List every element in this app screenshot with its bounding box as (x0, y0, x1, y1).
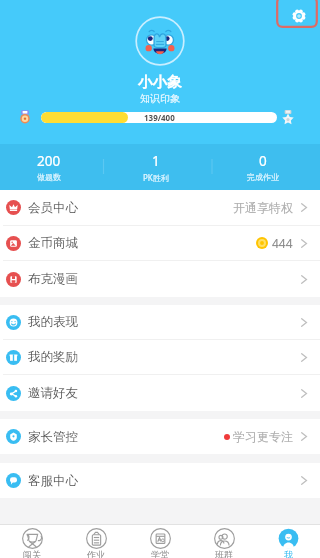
button[interactable]: 家长管控 (0, 419, 320, 454)
staticText: 学习更专注 (233, 429, 293, 444)
staticText: 邀请好友 (28, 385, 78, 401)
staticText: 444 (272, 235, 293, 251)
button[interactable]: 学堂 (128, 525, 192, 558)
staticText: 知识印象 (140, 92, 180, 105)
button[interactable]: 金币商城 (0, 226, 320, 261)
staticText: 完成作业 (247, 172, 279, 182)
button[interactable]: 我 (256, 525, 320, 558)
staticText: 我 (284, 549, 293, 558)
staticText: 金币商城 (28, 235, 78, 251)
button[interactable]: 我的表现 (0, 305, 320, 340)
staticText: 我的奖励 (28, 349, 78, 365)
staticText: 我的表现 (28, 314, 78, 330)
button[interactable]: 会员中心 (0, 190, 320, 226)
staticText: 作业 (87, 549, 105, 558)
button[interactable]: 作业 (64, 525, 128, 558)
staticText: 布克漫画 (28, 271, 78, 287)
button[interactable]: 邀请好友 (0, 375, 320, 411)
staticText: 0 (259, 152, 267, 170)
staticText: 做题数 (37, 172, 61, 182)
staticText: 200 (37, 152, 61, 170)
staticText: 闯关 (23, 549, 41, 558)
staticText: 小小象 (138, 73, 182, 91)
staticText: 班群 (215, 549, 233, 558)
staticText: 家长管控 (28, 429, 78, 445)
button[interactable]: 布克漫画 (0, 261, 320, 297)
button[interactable]: 闯关 (0, 525, 64, 558)
staticText: 开通享特权 (233, 200, 293, 215)
button[interactable]: Settings (276, 0, 318, 28)
button[interactable]: 客服中心 (0, 463, 320, 498)
staticText: 会员中心 (28, 200, 78, 216)
staticText: 139/400 (144, 112, 175, 123)
staticText: 客服中心 (28, 473, 78, 489)
staticText: PK胜利 (143, 172, 169, 183)
staticText: 1 (152, 152, 160, 170)
button[interactable]: 班群 (192, 525, 256, 558)
button[interactable]: 我的奖励 (0, 340, 320, 375)
staticText: 学堂 (151, 549, 169, 558)
